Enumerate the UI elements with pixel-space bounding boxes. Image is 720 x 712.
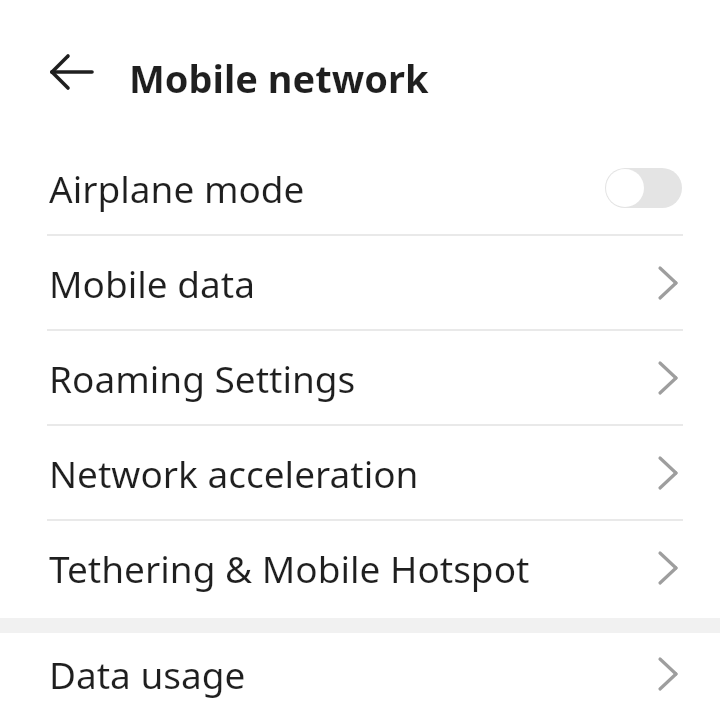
button[interactable]: Network acceleration: [0, 426, 720, 519]
staticText: Tethering & Mobile Hotspot: [49, 543, 530, 593]
staticText: Mobile network: [129, 52, 429, 104]
staticText: Roaming Settings: [49, 353, 356, 403]
button[interactable]: Data usage: [0, 635, 720, 712]
button[interactable]: Back: [42, 44, 98, 100]
button[interactable]: Airplane mode: [0, 140, 720, 235]
other: Airplane mode switch, off: [605, 168, 682, 208]
button[interactable]: Mobile data: [0, 236, 720, 329]
staticText: Data usage: [49, 649, 246, 699]
staticText: Network acceleration: [49, 448, 419, 498]
button[interactable]: Tethering & Mobile Hotspot: [0, 521, 720, 614]
staticText: Airplane mode: [49, 163, 305, 213]
staticText: Mobile data: [49, 258, 255, 308]
button[interactable]: Roaming Settings: [0, 331, 720, 424]
